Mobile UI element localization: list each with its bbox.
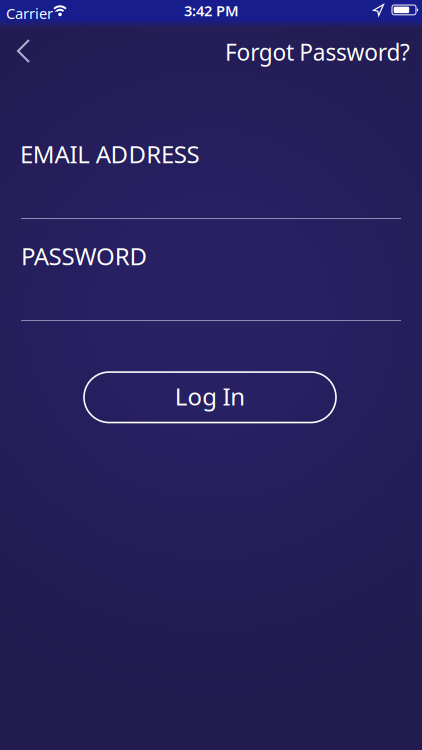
staticText: PASSWORD bbox=[21, 240, 148, 272]
staticText: Log In bbox=[175, 380, 245, 412]
button[interactable]: Log In bbox=[84, 372, 336, 423]
button[interactable] bbox=[21, 280, 401, 321]
staticText: Forgot Password? bbox=[225, 37, 410, 67]
staticText: Carrier bbox=[6, 3, 53, 23]
staticText: EMAIL ADDRESS bbox=[20, 138, 200, 170]
button[interactable]: Forgot Password? bbox=[0, 37, 422, 67]
staticText: 3:42 PM bbox=[184, 1, 239, 20]
button[interactable] bbox=[21, 178, 401, 219]
button[interactable] bbox=[9, 31, 38, 71]
